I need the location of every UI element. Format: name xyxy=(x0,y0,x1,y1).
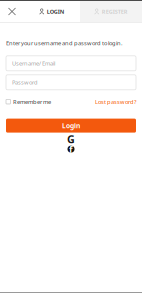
staticText: REGISTER xyxy=(102,8,128,15)
staticText: f xyxy=(69,143,73,155)
button[interactable]: Close xyxy=(0,1,24,22)
staticText: G xyxy=(67,132,75,146)
staticText: Enter your username and password to logi… xyxy=(6,39,123,47)
staticText: Password xyxy=(12,78,38,86)
staticText: Remember me xyxy=(13,98,51,106)
staticText: Login xyxy=(62,121,80,130)
button[interactable]: Remember me xyxy=(6,98,51,106)
staticText: Lost password? xyxy=(95,98,136,106)
staticText: LOGIN xyxy=(47,8,65,15)
button[interactable]: Lost password? xyxy=(95,98,136,106)
button[interactable]: Login xyxy=(6,119,136,133)
button[interactable]: LOGIN xyxy=(24,1,80,22)
button[interactable]: REGISTER xyxy=(80,1,142,22)
button[interactable]: Continue with Google xyxy=(67,136,74,143)
button[interactable]: Continue with Facebook xyxy=(67,146,74,153)
staticText: Username/ Email xyxy=(12,59,55,67)
